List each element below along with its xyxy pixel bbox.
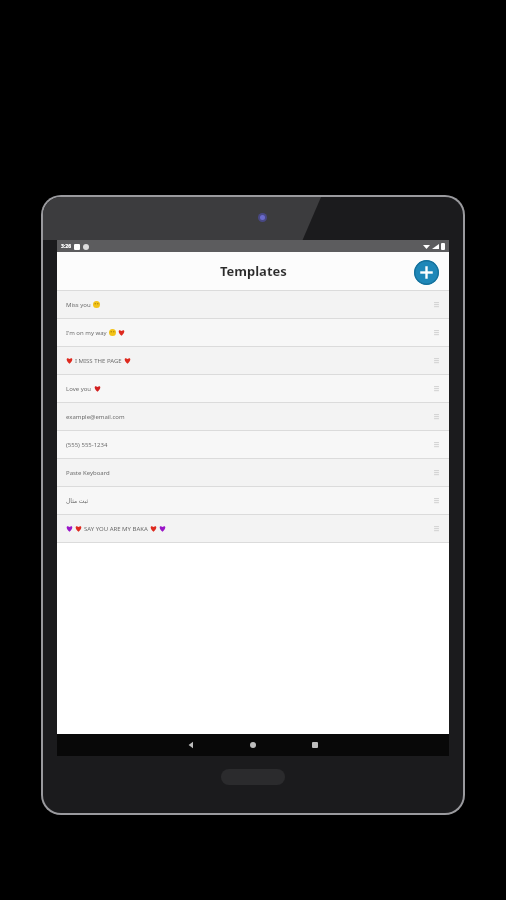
button[interactable]: (555) 555-1234: [57, 431, 449, 458]
staticText: SAY YOU ARE MY BAKA: [84, 525, 148, 533]
button[interactable]: Back: [176, 734, 206, 756]
staticText: example@email.com: [66, 413, 125, 421]
button[interactable]: Recent apps: [300, 734, 330, 756]
staticText: Love you: [66, 385, 92, 393]
staticText: (555) 555-1234: [66, 441, 108, 449]
button[interactable]: I MISS THE PAGE: [57, 347, 449, 374]
button[interactable]: I'm on my way: [57, 319, 449, 346]
button[interactable]: SAY YOU ARE MY BAKA: [57, 515, 449, 542]
staticText: Miss you: [66, 301, 91, 309]
staticText: Templates: [220, 262, 287, 280]
staticText: 3:26: [61, 243, 71, 250]
button[interactable]: Paste Keyboard: [57, 459, 449, 486]
button[interactable]: example@email.com: [57, 403, 449, 430]
staticText: I MISS THE PAGE: [75, 357, 122, 365]
staticText: ثبت مثال: [66, 497, 89, 505]
button[interactable]: Home: [238, 734, 268, 756]
button[interactable]: Love you: [57, 375, 449, 402]
button[interactable]: ثبت مثال: [57, 487, 449, 514]
button[interactable]: Miss you: [57, 291, 449, 318]
staticText: Paste Keyboard: [66, 469, 110, 477]
staticText: I'm on my way: [66, 329, 107, 337]
button[interactable]: Add template: [414, 260, 439, 285]
